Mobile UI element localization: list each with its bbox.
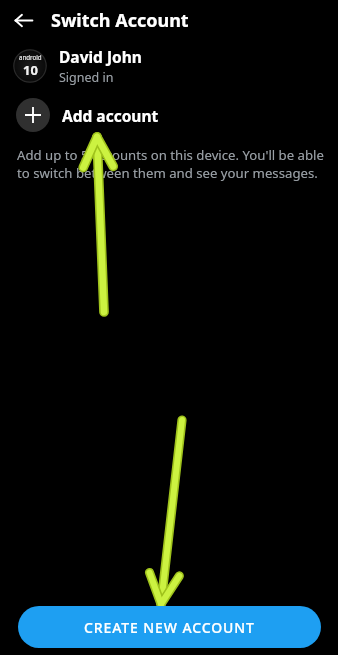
staticText: Add account [62, 105, 159, 126]
staticText: Add up to 5 accounts on this device. You… [17, 146, 324, 182]
staticText: CREATE NEW ACCOUNT [84, 618, 255, 637]
button[interactable]: CREATE NEW ACCOUNT [18, 606, 321, 648]
staticText: Signed in [59, 69, 114, 86]
button[interactable]: Back [6, 3, 40, 37]
staticText: David John [59, 46, 142, 67]
staticText: android [19, 53, 42, 61]
staticText: 10 [23, 61, 38, 79]
button[interactable]: Add account [0, 92, 338, 138]
button[interactable]: android [0, 40, 338, 92]
staticText: Switch Account [51, 8, 189, 33]
